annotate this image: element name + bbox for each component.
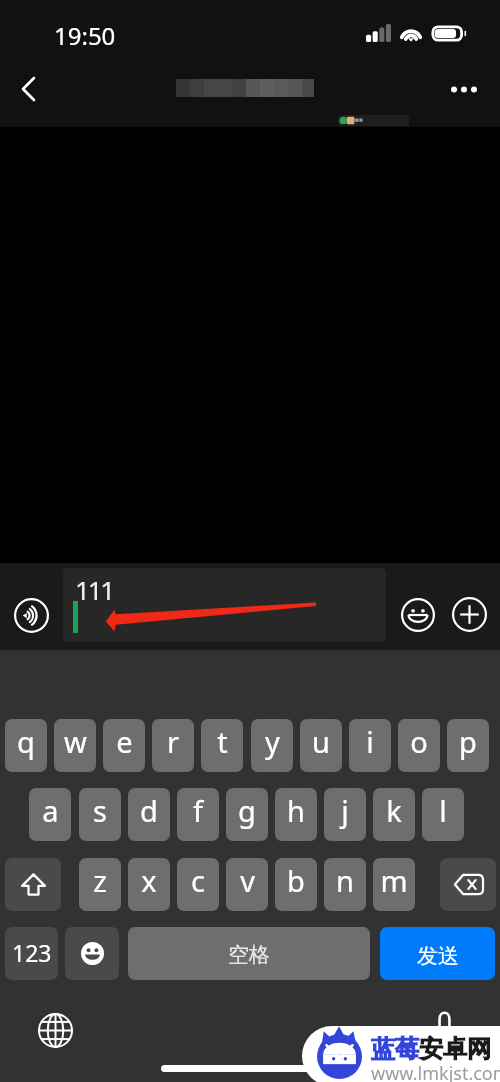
button[interactable]: 123 xyxy=(5,927,58,980)
button[interactable]: z xyxy=(79,858,121,911)
button[interactable]: s xyxy=(79,788,121,841)
button[interactable]: w xyxy=(54,719,96,772)
staticText: i xyxy=(366,722,374,761)
button[interactable]: q xyxy=(5,719,47,772)
button[interactable]: t xyxy=(201,719,243,772)
button[interactable]: v xyxy=(226,858,268,911)
staticText: o xyxy=(410,722,428,761)
button[interactable]: i xyxy=(349,719,391,772)
button[interactable]: r xyxy=(152,719,194,772)
button[interactable]: b xyxy=(275,858,317,911)
button[interactable]: f xyxy=(177,788,219,841)
staticText: p xyxy=(459,722,477,761)
staticText: u xyxy=(312,722,330,761)
button[interactable]: 发送 xyxy=(380,927,495,980)
button[interactable]: Back xyxy=(1,62,55,116)
staticText: t xyxy=(217,722,228,761)
staticText: e xyxy=(116,722,133,761)
button[interactable]: d xyxy=(128,788,170,841)
button[interactable]: Switch input language xyxy=(31,1006,79,1054)
staticText: y xyxy=(265,722,280,761)
button[interactable]: More options xyxy=(438,63,490,115)
button[interactable]: o xyxy=(398,719,440,772)
staticText: www.lmkjst.com xyxy=(371,1061,500,1082)
button[interactable]: Voice message xyxy=(8,592,54,638)
staticText: 发送 xyxy=(417,943,459,969)
button[interactable]: k xyxy=(373,788,415,841)
staticText: 空格 xyxy=(228,942,270,968)
button[interactable]: u xyxy=(300,719,342,772)
button[interactable]: y xyxy=(251,719,293,772)
staticText: 安卓网 xyxy=(419,1034,491,1064)
button[interactable]: Emoji keyboard xyxy=(65,927,119,980)
staticText: c xyxy=(191,861,205,900)
staticText: 123 xyxy=(12,937,52,968)
button[interactable]: m xyxy=(373,858,415,911)
button[interactable]: Shift xyxy=(5,858,61,911)
staticText: b xyxy=(287,861,305,900)
staticText: z xyxy=(93,861,107,900)
staticText: 111 xyxy=(75,572,114,607)
button[interactable]: e xyxy=(103,719,145,772)
staticText: 蓝莓 xyxy=(371,1034,419,1064)
staticText: w xyxy=(64,722,87,761)
button[interactable]: Emoji xyxy=(394,591,441,638)
staticText: r xyxy=(167,722,179,761)
staticText: q xyxy=(17,722,35,761)
button[interactable]: g xyxy=(226,788,268,841)
button[interactable]: j xyxy=(324,788,366,841)
button[interactable]: l xyxy=(422,788,464,841)
staticText: j xyxy=(341,791,349,830)
button[interactable]: a xyxy=(29,788,71,841)
staticText: l xyxy=(439,791,447,830)
staticText: x xyxy=(141,861,157,900)
staticText: v xyxy=(240,861,255,900)
button[interactable]: 空格 xyxy=(128,927,370,980)
staticText: f xyxy=(193,791,203,830)
staticText: 19:50 xyxy=(54,19,116,52)
staticText: h xyxy=(287,791,305,830)
button[interactable]: Backspace xyxy=(440,858,496,911)
button[interactable]: 111 xyxy=(63,568,386,642)
staticText: s xyxy=(93,791,107,830)
staticText: d xyxy=(140,791,158,830)
button[interactable]: n xyxy=(324,858,366,911)
staticText: n xyxy=(336,861,354,900)
staticText: g xyxy=(238,791,256,830)
staticText: k xyxy=(386,791,402,830)
button[interactable]: c xyxy=(177,858,219,911)
staticText: m xyxy=(380,861,408,900)
staticText: a xyxy=(42,791,59,830)
button[interactable]: h xyxy=(275,788,317,841)
button[interactable]: x xyxy=(128,858,170,911)
button[interactable]: Add attachment xyxy=(446,591,493,638)
button[interactable]: p xyxy=(447,719,489,772)
